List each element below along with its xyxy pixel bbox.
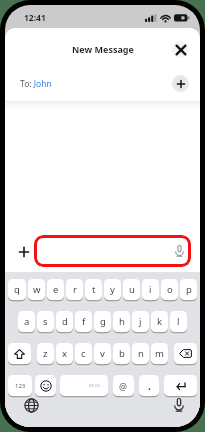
button[interactable]: m [151, 343, 168, 364]
staticText: u [129, 283, 135, 296]
staticText: b [119, 347, 125, 360]
button[interactable]: b [113, 343, 130, 364]
button[interactable]: l [170, 311, 187, 332]
button[interactable]: o [161, 279, 178, 300]
staticText: g [100, 315, 106, 328]
staticText: s [43, 315, 48, 328]
staticText: r [73, 283, 77, 296]
staticText: w [33, 283, 41, 296]
button[interactable]: h [113, 311, 130, 332]
staticText: New Message [72, 43, 134, 55]
button[interactable]: 123 [8, 375, 32, 396]
button[interactable] [174, 343, 197, 364]
staticText: q [14, 283, 20, 296]
button[interactable]: z [37, 343, 54, 364]
staticText: n [138, 347, 144, 360]
button[interactable]: p [180, 279, 197, 300]
button[interactable] [174, 397, 184, 412]
button[interactable]: EN ES [60, 375, 108, 396]
button[interactable]: s [37, 311, 54, 332]
button[interactable] [18, 246, 29, 257]
button[interactable]: i [142, 279, 159, 300]
staticText: a [24, 315, 30, 328]
staticText: v [100, 347, 105, 360]
staticText: 12:41 [24, 12, 46, 24]
staticText: o [167, 283, 173, 296]
button[interactable]: f [75, 311, 92, 332]
staticText: 123 [15, 382, 26, 390]
button[interactable] [24, 398, 39, 413]
button[interactable]: g [94, 311, 111, 332]
button[interactable]: v [94, 343, 111, 364]
button[interactable]: k [151, 311, 168, 332]
staticText: f [82, 315, 86, 328]
button[interactable] [34, 235, 191, 267]
button[interactable]: n [132, 343, 149, 364]
button[interactable]: t [85, 279, 102, 300]
button[interactable]: w [28, 279, 45, 300]
staticText: c [81, 347, 86, 360]
staticText: x [62, 347, 68, 360]
button[interactable] [164, 375, 197, 396]
button[interactable]: a [18, 311, 35, 332]
staticText: k [157, 315, 163, 328]
button[interactable]: r [66, 279, 83, 300]
button[interactable] [8, 343, 31, 364]
staticText: y [110, 283, 115, 296]
button[interactable]: q [8, 279, 26, 300]
staticText: EN ES [89, 383, 100, 388]
button[interactable]: e [47, 279, 64, 300]
button[interactable] [172, 75, 189, 92]
staticText: j [139, 315, 142, 328]
staticText: m [155, 347, 164, 360]
staticText: d [62, 315, 68, 328]
staticText: p [186, 283, 192, 296]
button[interactable] [35, 375, 56, 396]
staticText: i [149, 283, 152, 296]
button[interactable]: u [123, 279, 140, 300]
button[interactable]: c [75, 343, 92, 364]
staticText: . [148, 379, 151, 393]
button[interactable]: To: John [5, 66, 200, 101]
staticText: t [92, 283, 96, 296]
staticText: z [43, 347, 48, 360]
staticText: h [119, 315, 125, 328]
button[interactable]: x [56, 343, 73, 364]
staticText: To: John [20, 78, 52, 90]
button[interactable]: . [139, 375, 159, 396]
button[interactable]: @ [113, 375, 134, 396]
staticText: l [177, 315, 180, 328]
staticText: @ [119, 380, 128, 392]
staticText: e [53, 283, 59, 296]
button[interactable] [172, 41, 189, 58]
button[interactable]: j [132, 311, 149, 332]
button[interactable]: y [104, 279, 121, 300]
button[interactable]: d [56, 311, 73, 332]
